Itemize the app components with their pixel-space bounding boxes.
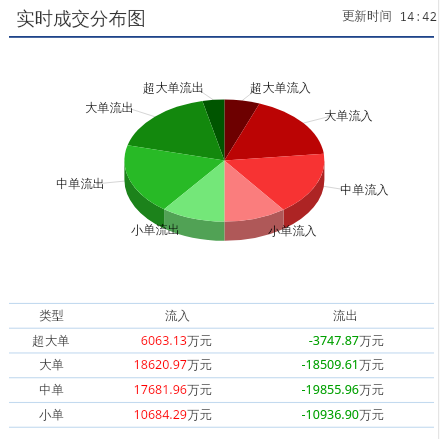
staticText: 类型 xyxy=(39,308,64,324)
staticText: 中单 xyxy=(39,382,64,398)
staticText: 流出 xyxy=(333,308,358,324)
staticText: 17681.96万元 xyxy=(133,381,212,398)
staticText: 更新时间 xyxy=(342,8,392,24)
staticText: 大单流出 xyxy=(85,100,134,115)
staticText: 10684.29万元 xyxy=(133,406,212,423)
button[interactable]: 超大单 xyxy=(0,328,111,353)
button[interactable]: -18509.61万元 xyxy=(234,352,384,377)
button[interactable]: 流出 xyxy=(285,303,405,328)
staticText: 14:42 xyxy=(392,8,438,25)
button[interactable]: 大单 xyxy=(0,352,111,377)
staticText: 大单流入 xyxy=(324,108,373,123)
staticText: 大单 xyxy=(39,357,64,373)
button[interactable]: -10936.90万元 xyxy=(234,402,384,427)
staticText: 6063.13万元 xyxy=(140,332,212,349)
button[interactable]: 类型 xyxy=(0,303,111,328)
staticText: 超大单流出 xyxy=(143,80,204,95)
button[interactable]: 6063.13万元 xyxy=(62,328,212,353)
staticText: 小单流出 xyxy=(131,222,180,237)
staticText: 小单流入 xyxy=(268,223,317,238)
staticText: 超大单流入 xyxy=(250,80,311,95)
button[interactable]: 17681.96万元 xyxy=(62,377,212,402)
button[interactable]: 小单 xyxy=(0,402,111,427)
staticText: 超大单 xyxy=(32,333,70,349)
button[interactable]: 10684.29万元 xyxy=(62,402,212,427)
staticText: 小单 xyxy=(39,407,64,423)
staticText: -10936.90万元 xyxy=(301,406,384,423)
staticText: -18509.61万元 xyxy=(301,356,384,373)
button[interactable]: 18620.97万元 xyxy=(62,352,212,377)
staticText: 中单流入 xyxy=(340,182,389,197)
button[interactable]: 流入 xyxy=(117,303,237,328)
staticText: -3747.87万元 xyxy=(308,332,384,349)
staticText: 流入 xyxy=(165,308,190,324)
button[interactable]: -3747.87万元 xyxy=(234,328,384,353)
staticText: 中单流出 xyxy=(56,176,105,191)
staticText: -19855.96万元 xyxy=(301,381,384,398)
button[interactable]: -19855.96万元 xyxy=(234,377,384,402)
staticText: 18620.97万元 xyxy=(133,356,212,373)
staticText: 实时成交分布图 xyxy=(16,7,146,30)
button[interactable]: 中单 xyxy=(0,377,111,402)
